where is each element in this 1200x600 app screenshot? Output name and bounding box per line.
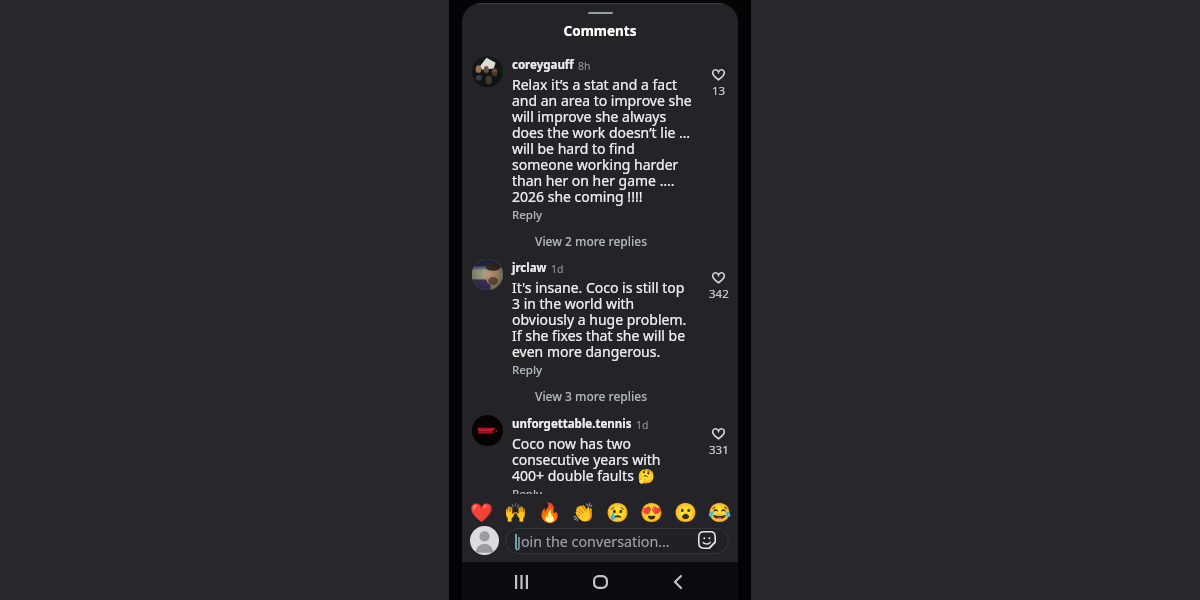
- button[interactable]: Wow: [669, 500, 703, 525]
- button[interactable]: Home: [582, 564, 618, 600]
- staticText: 1d: [551, 262, 564, 276]
- button[interactable]: Open profile of jrclaw: [472, 259, 503, 290]
- button[interactable]: Celebrate: [499, 500, 533, 525]
- button[interactable]: coreygauff: [512, 57, 574, 73]
- button[interactable]: Recents: [503, 564, 539, 600]
- staticText: View 3 more replies: [535, 388, 647, 404]
- button[interactable]: Clap: [567, 500, 601, 525]
- staticText: Relax it’s a stat and a fact and an area…: [512, 75, 694, 206]
- staticText: 😮: [674, 502, 698, 524]
- button[interactable]: Your profile: [470, 526, 499, 555]
- staticText: 🔥: [538, 502, 562, 524]
- staticText: 13: [712, 83, 726, 99]
- staticText: Coco now has two consecutive years with …: [512, 434, 694, 485]
- staticText: It's insane. Coco is still top 3 in the …: [512, 278, 694, 361]
- staticText: 🙌: [504, 502, 528, 524]
- button[interactable]: Fire: [533, 500, 567, 525]
- staticText: Join the conversation…: [517, 532, 670, 551]
- button[interactable]: Reply: [512, 362, 543, 378]
- button[interactable]: Sad: [601, 500, 635, 525]
- button[interactable]: Adore: [635, 500, 669, 525]
- button[interactable]: Laugh: [703, 500, 737, 525]
- button[interactable]: Like comment: [706, 272, 731, 302]
- staticText: 👏: [572, 502, 596, 524]
- button[interactable]: Like comment: [706, 428, 731, 458]
- staticText: 8h: [578, 59, 591, 73]
- button[interactable]: View 3 more replies: [512, 388, 670, 404]
- button[interactable]: Join the conversation…: [505, 528, 729, 554]
- button[interactable]: Stickers: [698, 531, 716, 549]
- staticText: 342: [709, 286, 729, 302]
- staticText: 331: [709, 442, 729, 458]
- staticText: 😍: [640, 502, 664, 524]
- staticText: 😂: [708, 502, 732, 524]
- button[interactable]: Reply: [512, 207, 543, 223]
- button[interactable]: Drag handle: [570, 6, 630, 19]
- button[interactable]: Love: [465, 500, 499, 525]
- button[interactable]: Open profile of unforgettable.tennis: [472, 415, 503, 446]
- staticText: Comments: [462, 22, 738, 40]
- button[interactable]: Reply: [512, 486, 543, 494]
- staticText: 1d: [636, 418, 649, 432]
- button[interactable]: jrclaw: [512, 260, 547, 276]
- staticText: 😢: [606, 502, 630, 524]
- button[interactable]: Like comment: [706, 69, 731, 99]
- staticText: ❤️: [470, 502, 494, 524]
- staticText: View 2 more replies: [535, 233, 647, 249]
- button[interactable]: unforgettable.tennis: [512, 416, 632, 432]
- button[interactable]: Back: [660, 564, 696, 600]
- button[interactable]: View 2 more replies: [512, 233, 670, 249]
- button[interactable]: Open profile of coreygauff: [472, 56, 503, 87]
